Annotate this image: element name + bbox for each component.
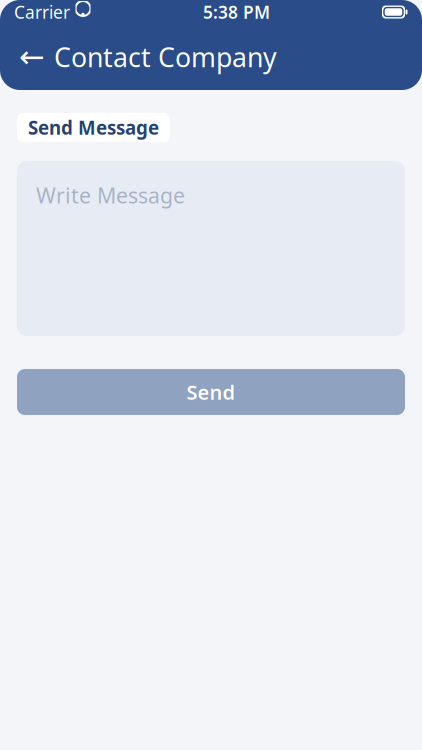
staticText: Write Message xyxy=(36,181,185,209)
staticText: Send xyxy=(186,379,235,405)
staticText xyxy=(70,0,75,23)
staticText: Contact Company xyxy=(54,39,277,75)
staticText: 5:38 PM xyxy=(203,0,270,23)
button[interactable]: Send xyxy=(17,369,405,415)
staticText: ← xyxy=(19,40,45,74)
button[interactable]: Back xyxy=(10,35,54,79)
staticText: Send Message xyxy=(28,115,159,140)
staticText: Carrier xyxy=(14,0,70,23)
